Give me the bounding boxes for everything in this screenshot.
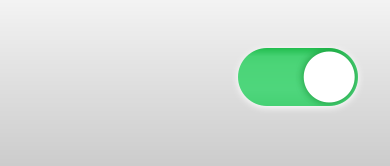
button[interactable]: Toggle on — [238, 48, 358, 106]
